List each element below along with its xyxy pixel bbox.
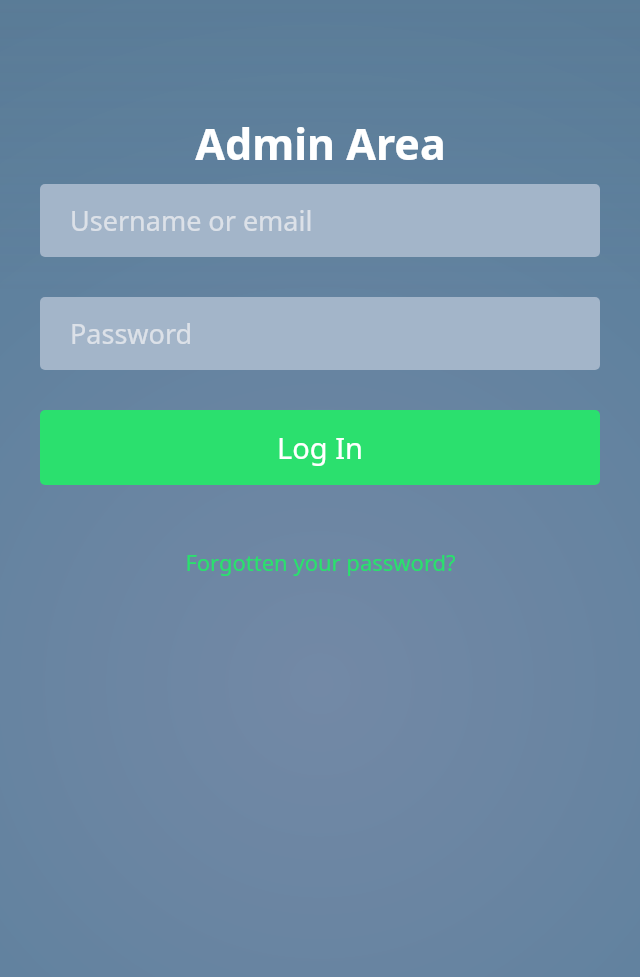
staticText: Password — [70, 315, 193, 352]
button[interactable]: Password — [40, 297, 600, 370]
button[interactable]: Log In — [40, 410, 600, 485]
staticText: Admin Area — [195, 114, 446, 173]
staticText: Forgotten your password? — [185, 547, 456, 577]
staticText: Username or email — [70, 202, 313, 239]
button[interactable]: Username or email — [40, 184, 600, 257]
button[interactable]: Forgotten your password? — [177, 541, 464, 583]
staticText: Log In — [277, 428, 363, 467]
